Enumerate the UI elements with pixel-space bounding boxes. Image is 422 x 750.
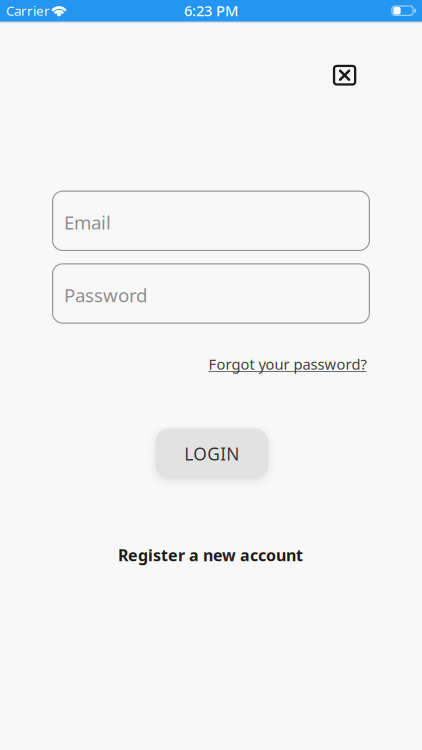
staticText: Register a new account <box>118 544 303 566</box>
button[interactable]: Register a new account <box>118 544 303 566</box>
staticText: 6:23 PM <box>184 1 238 20</box>
button[interactable]: LOGIN <box>155 428 268 479</box>
staticText: Password <box>64 283 147 307</box>
button[interactable]: Password <box>52 263 370 324</box>
staticText: Carrier <box>6 2 50 19</box>
staticText: Email <box>64 210 111 235</box>
button[interactable]: Email <box>52 191 370 251</box>
button[interactable]: Forgot your password? <box>208 354 366 374</box>
staticText: LOGIN <box>184 442 239 465</box>
button[interactable]: Close <box>333 65 356 86</box>
staticText: Forgot your password? <box>208 354 366 374</box>
